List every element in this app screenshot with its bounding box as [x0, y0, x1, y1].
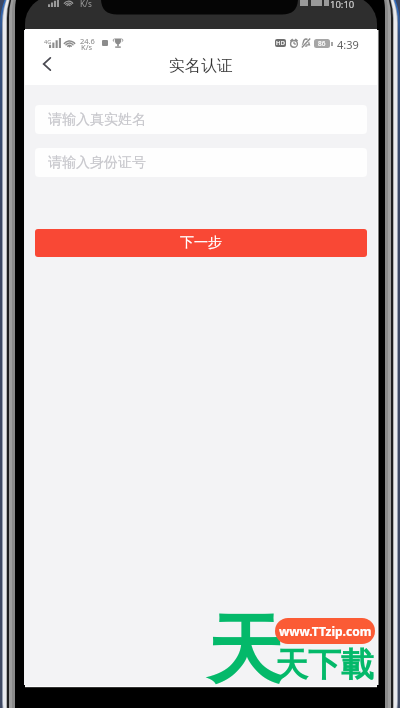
- staticText: 24.6: [80, 36, 95, 46]
- button[interactable]: 下一步: [35, 229, 367, 257]
- staticText: HD: [276, 39, 285, 47]
- staticText: 请输入身份证号: [48, 154, 146, 172]
- staticText: 天: [207, 603, 283, 699]
- button[interactable]: 请输入真实姓名: [35, 105, 367, 134]
- staticText: 实名认证: [169, 56, 233, 76]
- staticText: 请输入真实姓名: [48, 111, 146, 129]
- staticText: 86: [318, 39, 326, 48]
- staticText: 4:39: [337, 37, 359, 51]
- staticText: 4G: [44, 38, 52, 45]
- button[interactable]: 请输入身份证号: [35, 148, 367, 177]
- button[interactable]: Back: [34, 51, 60, 77]
- staticText: K/s: [81, 42, 93, 52]
- staticText: K/s: [80, 0, 92, 9]
- staticText: www.TTzip.com: [279, 623, 372, 639]
- staticText: 天下載: [275, 644, 374, 686]
- staticText: 下一步: [180, 234, 222, 252]
- staticText: 10:10: [330, 0, 355, 11]
